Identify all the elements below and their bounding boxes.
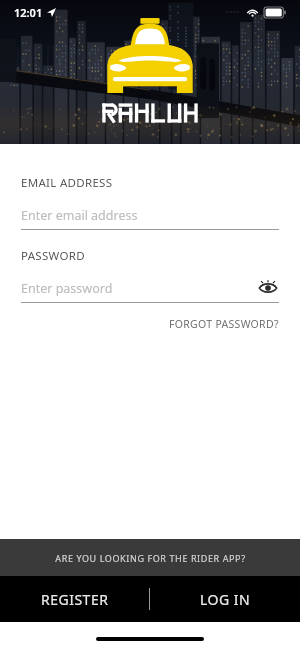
button[interactable]: Show password bbox=[257, 277, 279, 299]
button[interactable]: Enter email address bbox=[21, 204, 279, 226]
button[interactable]: ARE YOU LOOKING FOR THE RIDER APP? bbox=[0, 539, 300, 576]
button[interactable]: Enter password bbox=[21, 277, 279, 299]
staticText: EMAIL ADDRESS bbox=[21, 175, 113, 191]
button[interactable]: REGISTER bbox=[0, 576, 149, 622]
staticText: LOG IN bbox=[200, 590, 251, 609]
button[interactable]: FORGOT PASSWORD? bbox=[169, 313, 279, 335]
staticText: 12:01 bbox=[14, 5, 43, 20]
staticText: REGISTER bbox=[41, 590, 109, 609]
staticText: FORGOT PASSWORD? bbox=[169, 317, 279, 331]
staticText: Enter password bbox=[21, 280, 113, 297]
staticText: Enter email address bbox=[21, 207, 138, 224]
staticText: ARE YOU LOOKING FOR THE RIDER APP? bbox=[55, 552, 246, 564]
button[interactable]: LOG IN bbox=[150, 576, 300, 622]
staticText: PASSWORD bbox=[21, 248, 85, 264]
